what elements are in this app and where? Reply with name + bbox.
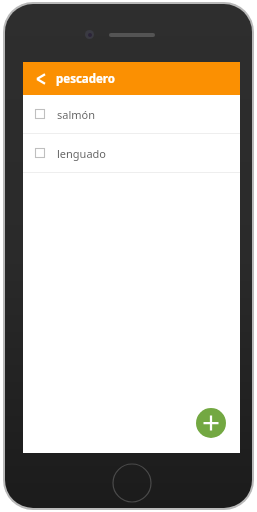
button[interactable]: lenguado [23,134,240,172]
staticText: salmón [57,107,96,122]
staticText: lenguado [57,146,106,161]
button[interactable]: salmón [23,95,240,133]
button[interactable]: Add item [196,408,226,438]
button[interactable]: Navigate up [30,69,50,89]
staticText: pescadero [56,71,115,87]
